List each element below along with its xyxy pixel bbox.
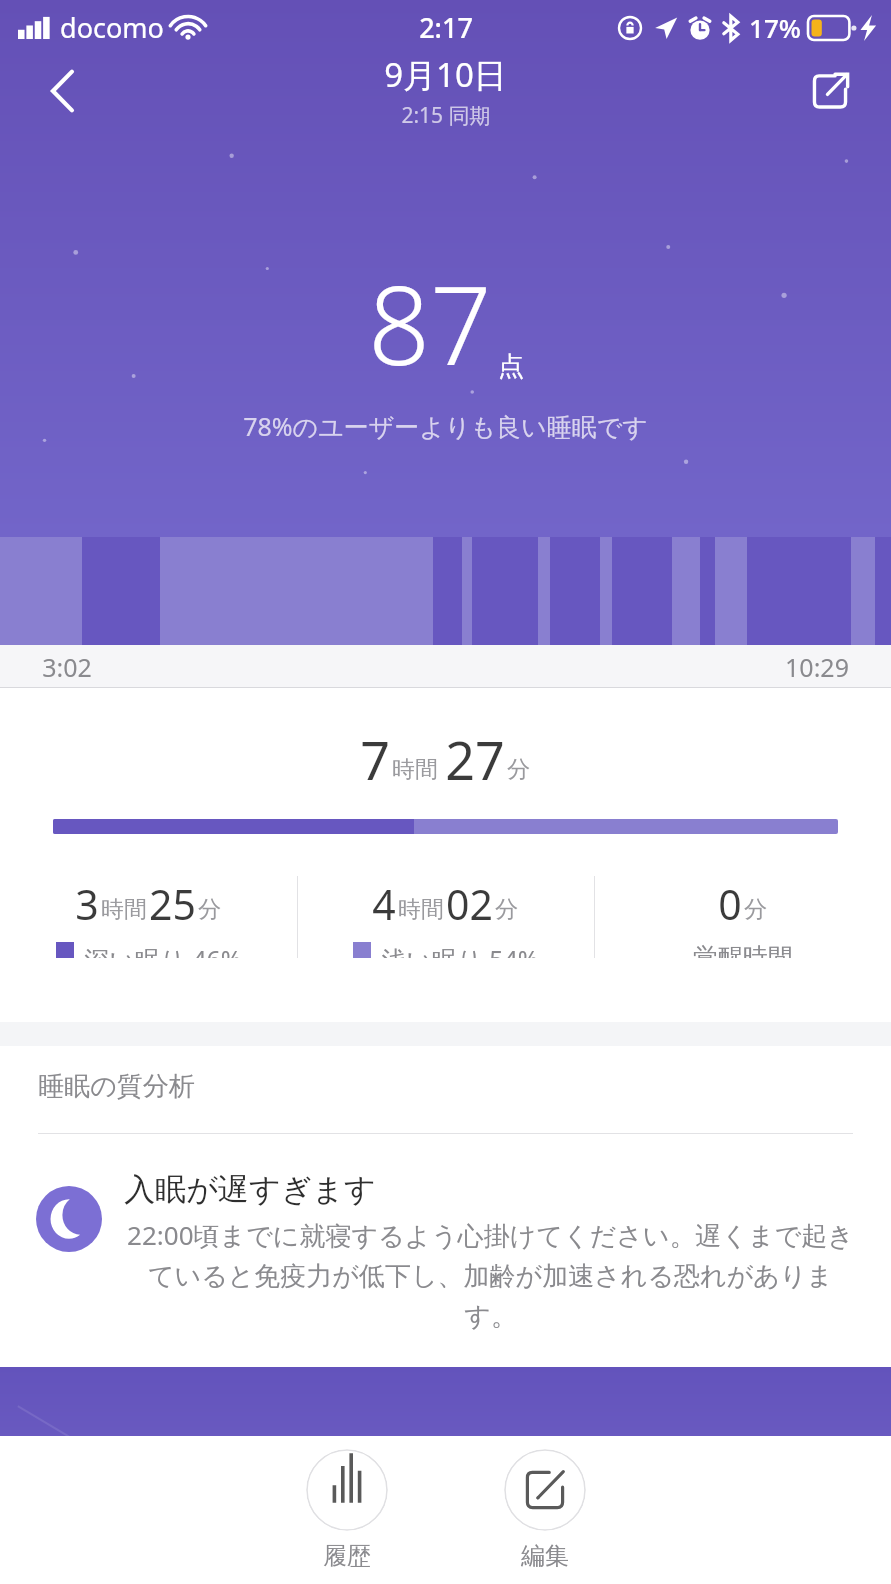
staticText: 22:00頃までに就寝するよう心掛けてください。遅くまで起きていると免疫力が低下…	[124, 1217, 857, 1333]
staticText: 時間	[392, 755, 438, 784]
staticText: 9月10日	[384, 52, 507, 97]
staticText: 点	[498, 350, 524, 383]
staticText: 時間	[101, 895, 147, 924]
staticText: 履歴	[323, 1541, 371, 1571]
staticText: 時間	[398, 895, 444, 924]
button[interactable]: 入眠が遅すぎます	[0, 1170, 891, 1333]
staticText: 深い眠り 46%	[84, 942, 242, 958]
staticText: 2:15 同期	[401, 101, 491, 130]
staticText: 27	[445, 724, 505, 795]
staticText: 分	[507, 755, 530, 784]
staticText: 4	[372, 876, 396, 932]
button[interactable]: 3	[0, 876, 297, 958]
staticText: 睡眠の質分析	[38, 1070, 195, 1103]
staticText: 浅い眠り 54%	[381, 942, 539, 958]
staticText: 10:29	[785, 650, 849, 684]
staticText: 編集	[521, 1541, 569, 1571]
button[interactable]: 4	[298, 876, 594, 958]
staticText: 覚醒時間	[693, 942, 793, 958]
staticText: 87	[368, 250, 492, 397]
button[interactable]: 睡眠の規則性	[0, 1367, 891, 1584]
button[interactable]: Share	[795, 56, 865, 126]
staticText: 2:17	[419, 9, 473, 46]
button[interactable]: 編集	[486, 1443, 604, 1577]
staticText: 25	[149, 876, 196, 932]
staticText: 入眠が遅すぎます	[124, 1170, 376, 1209]
staticText: 7	[360, 724, 390, 795]
staticText: 17%	[749, 10, 801, 45]
button[interactable]: Back	[24, 52, 102, 130]
staticText: 分	[744, 895, 767, 924]
staticText: 分	[198, 895, 221, 924]
button[interactable]: 0	[595, 876, 891, 958]
staticText: 78%のユーザーよりも良い睡眠です	[243, 409, 648, 443]
staticText: 02	[446, 876, 493, 932]
staticText: 睡眠の規則性	[352, 1477, 539, 1516]
staticText: 3:02	[42, 650, 92, 684]
staticText: 3	[75, 876, 99, 932]
button[interactable]: 履歴	[288, 1443, 406, 1577]
staticText: docomo	[60, 9, 164, 46]
staticText: 0	[718, 876, 742, 932]
staticText: 分	[495, 895, 518, 924]
